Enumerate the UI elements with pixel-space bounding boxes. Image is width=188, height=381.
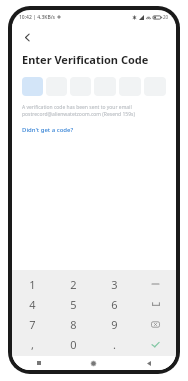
button[interactable]: 0 <box>53 334 94 354</box>
button[interactable]: 3 <box>94 274 135 294</box>
staticText: 10:42 | 4.3KB/s <box>19 14 56 21</box>
button[interactable]: enter <box>135 294 176 314</box>
button[interactable]: 7 <box>12 314 53 334</box>
button[interactable]: 4 <box>12 294 53 314</box>
button[interactable]: Back <box>18 28 36 46</box>
button[interactable]: 9 <box>94 314 135 334</box>
staticText: A verification code has been sent to you… <box>22 104 135 118</box>
button[interactable]: Digit 1 <box>22 77 43 96</box>
button[interactable]: 6 <box>94 294 135 314</box>
button[interactable]: Recents <box>12 356 66 370</box>
staticText: 6 <box>111 297 118 312</box>
button[interactable]: 1 <box>12 274 53 294</box>
staticText: 2 <box>70 277 77 292</box>
staticText: 9 <box>111 317 118 332</box>
staticText: , <box>31 337 34 352</box>
staticText: 8 <box>70 317 77 332</box>
button[interactable]: Back <box>121 356 176 370</box>
button[interactable]: Didn't get a code? <box>22 125 74 135</box>
staticText: 7 <box>29 317 36 332</box>
button[interactable]: 5 <box>53 294 94 314</box>
button[interactable]: 2 <box>53 274 94 294</box>
staticText: 3 <box>111 277 118 292</box>
staticText: . <box>113 337 116 352</box>
button[interactable]: 8 <box>53 314 94 334</box>
staticText: 20 <box>163 14 169 20</box>
button[interactable]: dash <box>135 274 176 294</box>
staticText: Didn't get a code? <box>22 126 74 134</box>
button[interactable]: . <box>94 334 135 354</box>
button[interactable]: Home <box>66 356 121 370</box>
staticText: 4 <box>29 297 36 312</box>
staticText: Enter Verification Code <box>22 52 149 67</box>
staticText: 0 <box>70 337 77 352</box>
staticText: 1 <box>29 277 36 292</box>
button[interactable]: , <box>12 334 53 354</box>
staticText: 5 <box>70 297 77 312</box>
button[interactable]: del <box>135 314 176 334</box>
button[interactable]: check <box>135 334 176 354</box>
